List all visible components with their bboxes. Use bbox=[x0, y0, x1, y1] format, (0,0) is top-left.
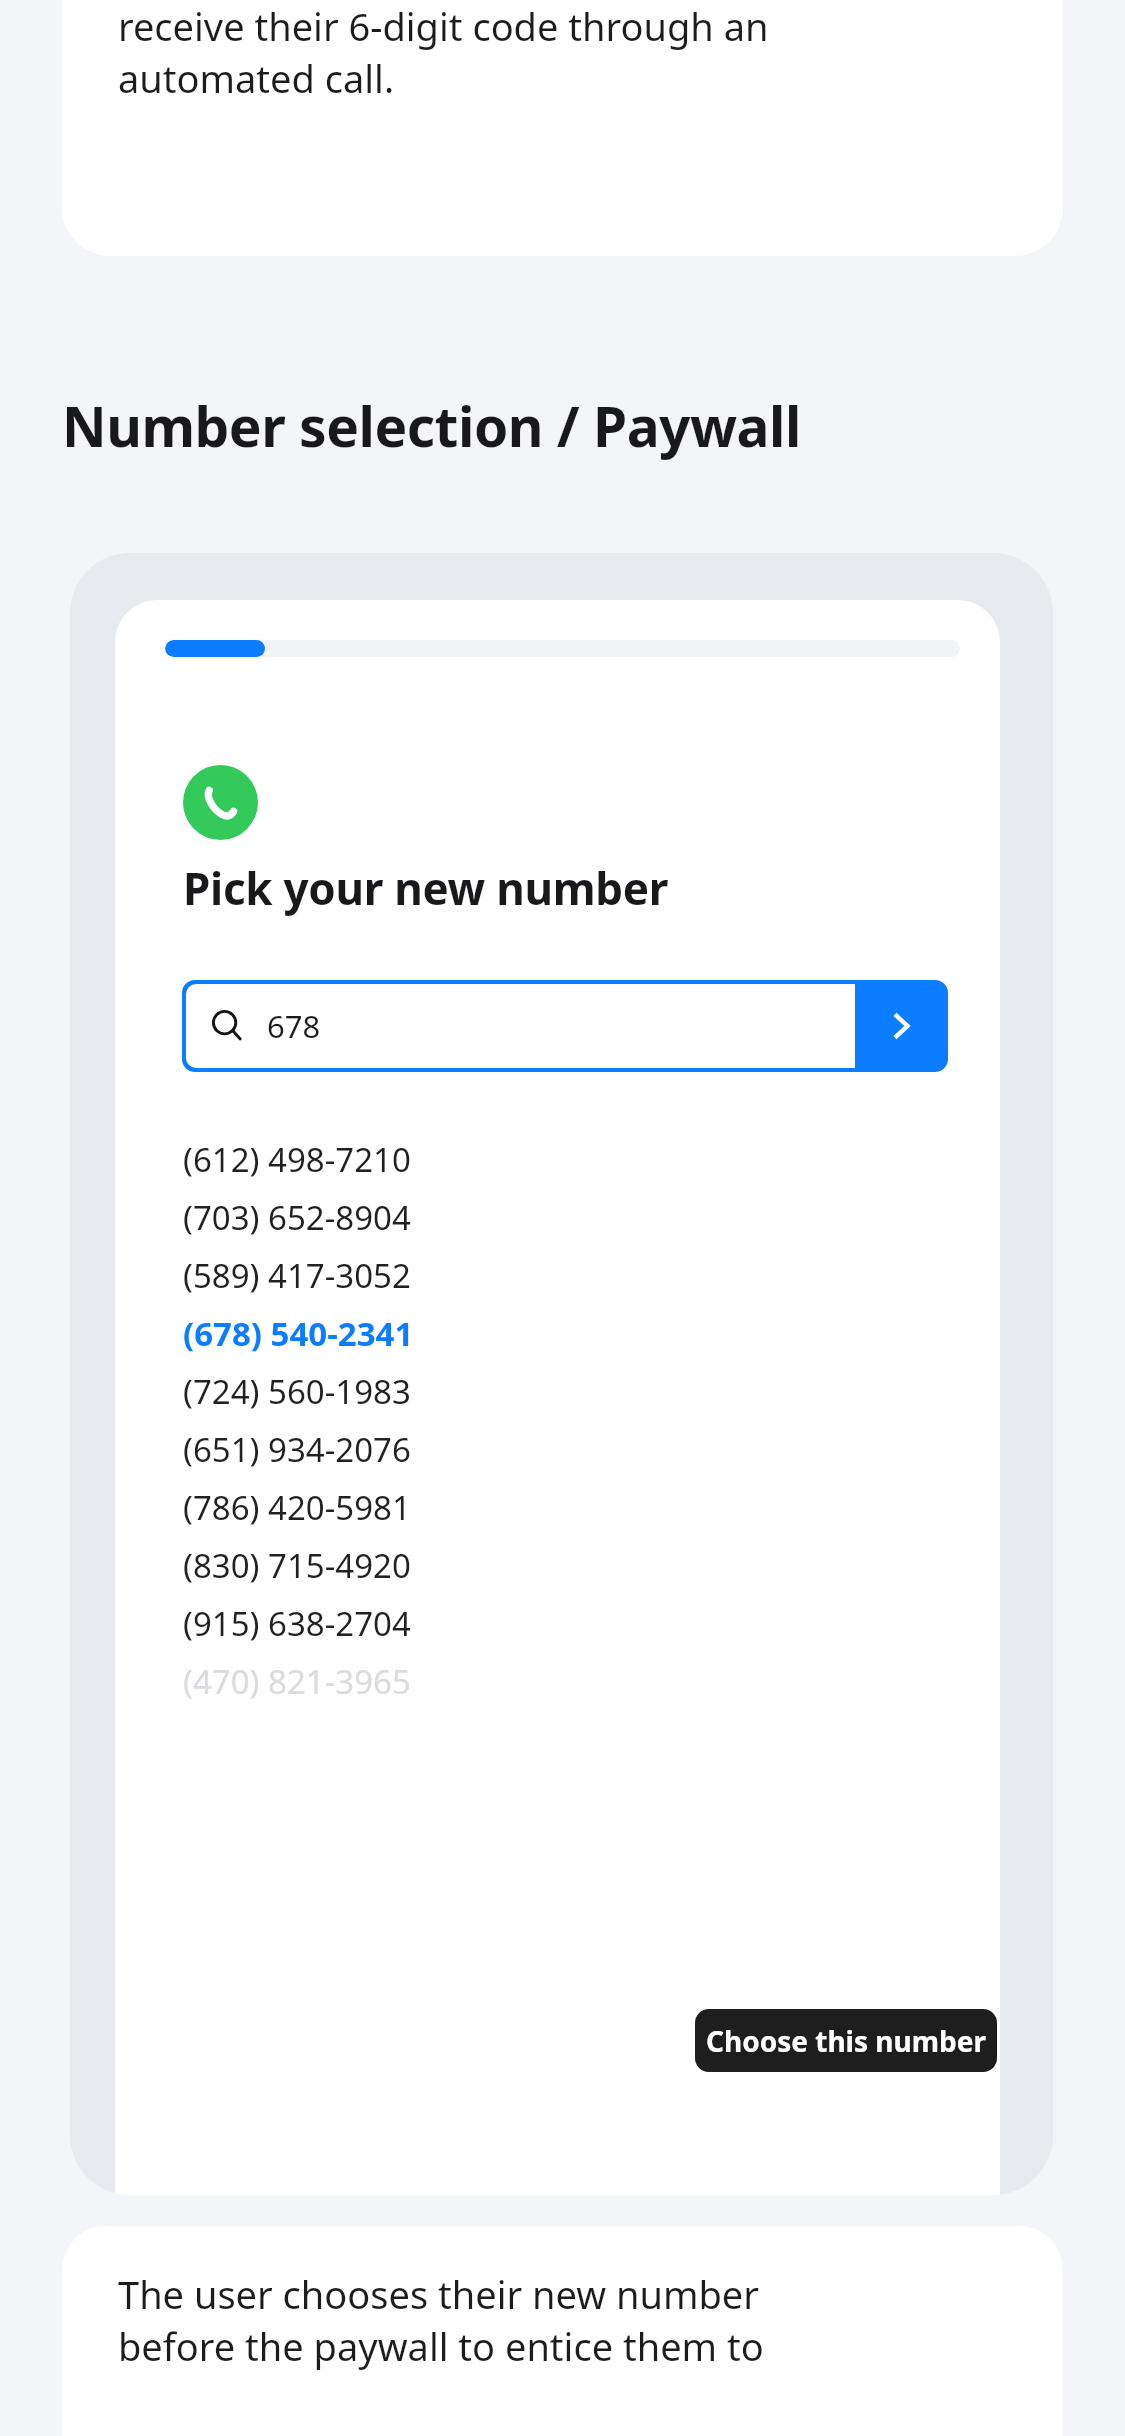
button[interactable]: (915) 638-2704 bbox=[171, 1594, 591, 1652]
staticText: Choose this number bbox=[706, 2022, 986, 2060]
staticText: (786) 420-5981 bbox=[183, 1485, 411, 1530]
staticText: Number selection / Paywall bbox=[62, 388, 801, 463]
button[interactable]: (470) 821-3965 bbox=[171, 1652, 591, 1710]
button[interactable]: Search bbox=[855, 980, 948, 1072]
button[interactable]: (589) 417-3052 bbox=[171, 1246, 591, 1304]
staticText: 678 bbox=[267, 1005, 321, 1047]
staticText: (612) 498-7210 bbox=[183, 1137, 411, 1182]
staticText: (724) 560-1983 bbox=[183, 1369, 411, 1414]
staticText: (589) 417-3052 bbox=[183, 1253, 411, 1298]
staticText: (915) 638-2704 bbox=[183, 1601, 411, 1646]
button[interactable]: (612) 498-7210 bbox=[171, 1130, 591, 1188]
button[interactable]: (678) 540-2341 bbox=[171, 1304, 591, 1362]
staticText: (678) 540-2341 bbox=[183, 1311, 414, 1356]
button[interactable]: (786) 420-5981 bbox=[171, 1478, 591, 1536]
button[interactable]: Choose this number bbox=[695, 2009, 997, 2072]
staticText: The user chooses their new number bbox=[118, 2268, 759, 2320]
staticText: automated call. bbox=[118, 52, 395, 104]
button[interactable]: (703) 652-8904 bbox=[171, 1188, 591, 1246]
button[interactable]: (830) 715-4920 bbox=[171, 1536, 591, 1594]
staticText: receive their 6-digit code through an bbox=[118, 0, 769, 52]
staticText: before the paywall to entice them to bbox=[118, 2320, 764, 2372]
staticText: (651) 934-2076 bbox=[183, 1427, 411, 1472]
button[interactable]: (724) 560-1983 bbox=[171, 1362, 591, 1420]
staticText: (830) 715-4920 bbox=[183, 1543, 411, 1588]
staticText: Pick your new number bbox=[183, 858, 669, 918]
button[interactable]: (651) 934-2076 bbox=[171, 1420, 591, 1478]
staticText: (470) 821-3965 bbox=[183, 1659, 411, 1704]
button[interactable]: 678 bbox=[182, 980, 948, 1072]
staticText: (703) 652-8904 bbox=[183, 1195, 411, 1240]
other: Phone bbox=[183, 765, 258, 840]
